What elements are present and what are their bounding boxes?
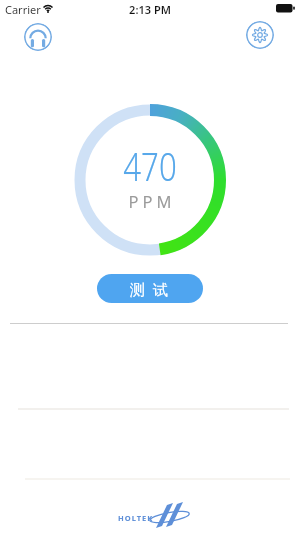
staticText: 470 [27, 140, 273, 192]
staticText: PPM [2, 190, 300, 212]
staticText: 测 试 [130, 279, 170, 299]
staticText: 2:13 PM [0, 2, 300, 17]
button[interactable]: 测 试 [97, 274, 203, 303]
button[interactable] [246, 21, 274, 49]
staticText: Carrier [5, 2, 41, 17]
button[interactable] [24, 23, 52, 51]
staticText: HOLTEK [118, 513, 154, 523]
